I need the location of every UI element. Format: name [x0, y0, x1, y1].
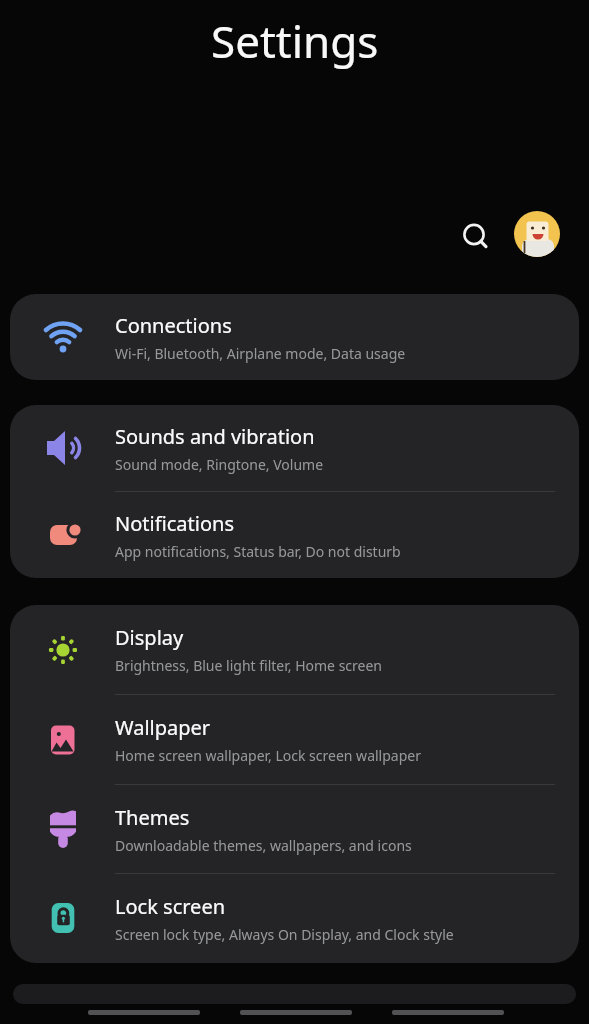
button[interactable]	[456, 217, 492, 253]
staticText: Downloadable themes, wallpapers, and ico…	[115, 836, 412, 855]
staticText: Brightness, Blue light filter, Home scre…	[115, 656, 383, 675]
staticText: Sound mode, Ringtone, Volume	[115, 455, 324, 474]
staticText: Connections	[115, 312, 232, 339]
staticText: Display	[115, 624, 184, 651]
button[interactable]: Lock screen	[10, 874, 579, 962]
button[interactable]	[514, 211, 560, 257]
button[interactable]: Sounds and vibration	[10, 405, 579, 491]
staticText: Wi-Fi, Bluetooth, Airplane mode, Data us…	[115, 344, 406, 363]
staticText: Sounds and vibration	[115, 423, 315, 450]
staticText: Home screen wallpaper, Lock screen wallp…	[115, 746, 421, 765]
staticText: Themes	[115, 804, 190, 831]
staticText: Lock screen	[115, 893, 226, 920]
staticText: Screen lock type, Always On Display, and…	[115, 925, 454, 944]
button[interactable]: Themes	[10, 785, 579, 873]
button[interactable]: Connections	[10, 294, 579, 380]
button[interactable]: Wallpaper	[10, 695, 579, 784]
staticText: Settings	[211, 11, 379, 71]
button[interactable]: Display	[10, 605, 579, 694]
button[interactable]: Notifications	[10, 492, 579, 578]
staticText: Notifications	[115, 510, 234, 537]
staticText: App notifications, Status bar, Do not di…	[115, 542, 401, 561]
staticText: Wallpaper	[115, 714, 211, 741]
